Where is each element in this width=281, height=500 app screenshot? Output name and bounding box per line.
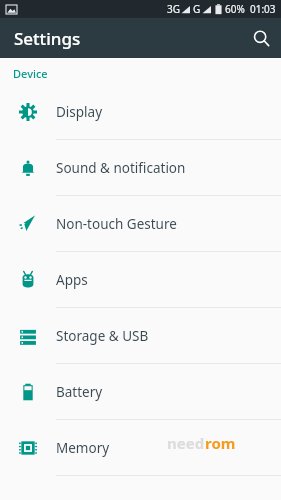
staticText: rom (205, 433, 236, 453)
staticText: Battery (56, 383, 103, 401)
button[interactable]: Non-touch Gesture (0, 196, 281, 252)
staticText: 60% (225, 2, 245, 16)
staticText: 3G (167, 2, 180, 16)
staticText: 01:03 (250, 2, 276, 16)
staticText: Storage & USB (56, 327, 149, 345)
staticText: Memory (56, 439, 110, 457)
staticText: Settings (14, 27, 81, 50)
button[interactable]: Battery (0, 364, 281, 420)
button[interactable]: Sound & notification (0, 140, 281, 196)
staticText: Apps (56, 271, 88, 289)
staticText: Sound & notification (56, 159, 186, 177)
staticText: Display (56, 103, 103, 121)
button[interactable]: Display (0, 84, 281, 140)
staticText: Device (13, 66, 48, 81)
button[interactable]: Apps (0, 252, 281, 308)
staticText: G (193, 2, 201, 16)
button[interactable]: Memory (0, 420, 281, 476)
button[interactable]: Storage & USB (0, 308, 281, 364)
staticText: Non-touch Gesture (56, 215, 177, 233)
staticText: need (167, 433, 205, 453)
button[interactable]: Search (241, 18, 281, 58)
